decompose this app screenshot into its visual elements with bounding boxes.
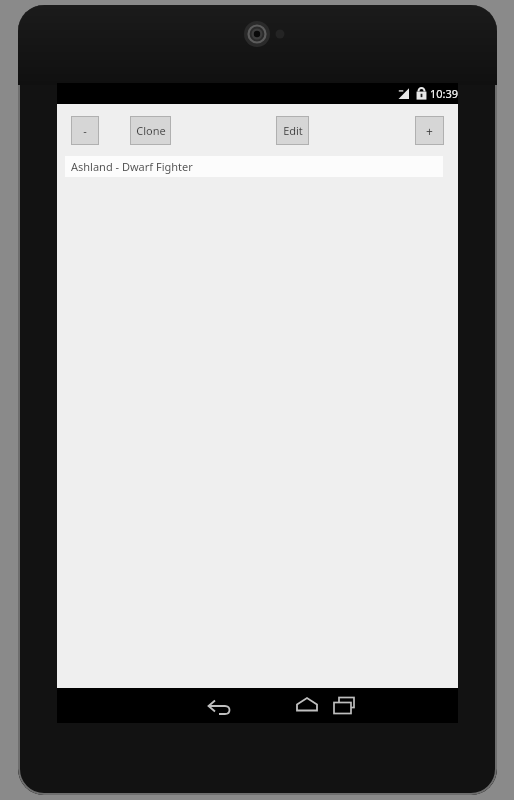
button[interactable]: +	[415, 116, 444, 145]
button[interactable]: Back	[195, 688, 245, 723]
button[interactable]: Home	[282, 688, 332, 723]
button[interactable]: Ashland - Dwarf Fighter	[65, 156, 443, 177]
staticText: Clone	[136, 123, 166, 138]
button[interactable]: -	[71, 116, 99, 145]
button[interactable]: Edit	[276, 116, 309, 145]
staticText: -	[83, 123, 87, 138]
staticText: 10:39	[430, 86, 459, 101]
staticText: Ashland - Dwarf Fighter	[71, 159, 193, 174]
button[interactable]: Clone	[130, 116, 171, 145]
staticText: +	[426, 123, 433, 139]
staticText: Edit	[283, 123, 303, 138]
button[interactable]: Recent apps	[319, 688, 369, 723]
